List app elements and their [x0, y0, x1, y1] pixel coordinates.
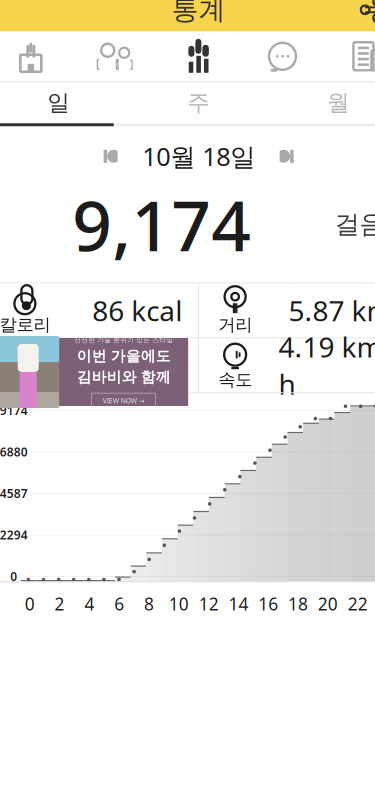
button[interactable]: 월: [268, 82, 375, 123]
button[interactable]: 소식: [324, 31, 375, 81]
staticText: 14: [228, 592, 248, 615]
staticText: 월: [327, 89, 350, 117]
staticText: 0: [25, 592, 35, 615]
staticText: VIEW NOW →: [103, 396, 145, 405]
staticText: 통계: [172, 0, 226, 26]
staticText: 칼로리: [0, 314, 50, 335]
staticText: 0: [10, 568, 17, 584]
staticText: 82 분: [115, 347, 182, 384]
staticText: 선선한 가을 분위기 있는 스타일: [74, 336, 173, 344]
button[interactable]: 홈: [0, 31, 73, 81]
staticText: 9,174: [72, 178, 251, 270]
staticText: 16: [258, 592, 278, 615]
staticText: 4.19 km/h: [278, 328, 375, 403]
staticText: 20: [318, 592, 338, 615]
staticText: 9174: [0, 402, 28, 418]
button[interactable]: 속도: [199, 338, 375, 392]
button[interactable]: 시간: [0, 338, 198, 392]
staticText: 10: [169, 592, 189, 615]
staticText: 2294: [0, 527, 28, 543]
staticText: 6880: [0, 444, 28, 460]
staticText: 이번 가을에도: [77, 347, 171, 365]
staticText: 8: [144, 592, 154, 615]
staticText: 86 kcal: [92, 292, 182, 329]
button[interactable]: 이전 날짜: [87, 136, 135, 176]
staticText: 속도: [218, 369, 252, 390]
button[interactable]: 공유: [346, 0, 375, 32]
staticText: 4587: [0, 485, 28, 501]
button[interactable]: 친구: [73, 31, 157, 81]
staticText: 거리: [218, 314, 252, 335]
button[interactable]: 칼로리: [0, 283, 198, 337]
staticText: 10월 18일: [142, 139, 255, 173]
staticText: 일: [47, 89, 70, 117]
staticText: 6: [114, 592, 124, 615]
staticText: 4: [84, 592, 94, 615]
staticText: 걸음: [334, 209, 375, 240]
staticText: 22: [348, 592, 368, 615]
staticText: 12: [199, 592, 219, 615]
staticText: 주: [187, 89, 210, 117]
staticText: 5.87 km: [288, 292, 375, 329]
button[interactable]: 주: [129, 82, 268, 123]
button[interactable]: 통계: [157, 31, 241, 81]
staticText: 18: [288, 592, 308, 615]
staticText: 김바비와 함께: [77, 368, 171, 386]
button[interactable]: 메시지: [241, 31, 324, 81]
button[interactable]: 선선한 가을 분위기 있는 스타일: [0, 338, 204, 812]
button[interactable]: 다음 날짜: [263, 136, 311, 176]
button[interactable]: 거리: [199, 283, 375, 337]
staticText: 시간: [8, 369, 42, 390]
staticText: 2: [55, 592, 65, 615]
button[interactable]: 일: [0, 82, 129, 123]
